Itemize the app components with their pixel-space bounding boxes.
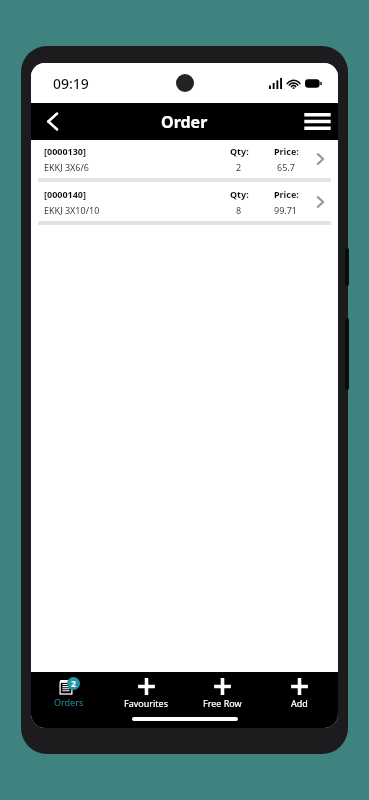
staticText: Orders bbox=[54, 696, 84, 708]
button[interactable]: [0000140] bbox=[31, 183, 338, 221]
staticText: EKKJ 3X6/6 bbox=[44, 161, 90, 173]
staticText: [0000140] bbox=[44, 188, 86, 200]
staticText: Qty: bbox=[230, 145, 249, 157]
staticText: 09:19 bbox=[53, 74, 89, 93]
button[interactable]: Back bbox=[31, 103, 73, 140]
staticText: Favourites bbox=[124, 697, 168, 709]
staticText: Qty: bbox=[230, 188, 249, 200]
button[interactable]: Menu bbox=[296, 103, 338, 140]
staticText: [0000130] bbox=[44, 145, 86, 157]
button[interactable]: Free Row bbox=[184, 677, 261, 709]
staticText: 2 bbox=[236, 161, 242, 173]
staticText: 99.71 bbox=[274, 204, 298, 216]
button[interactable]: Favourites bbox=[107, 677, 184, 709]
staticText: Free Row bbox=[203, 697, 242, 709]
staticText: Price: bbox=[274, 188, 299, 200]
staticText: 2 bbox=[71, 678, 76, 689]
staticText: EKKJ 3X10/10 bbox=[44, 204, 100, 216]
staticText: Add bbox=[291, 697, 308, 709]
button[interactable]: [0000130] bbox=[31, 140, 338, 178]
button[interactable]: Add bbox=[261, 677, 338, 709]
staticText: 8 bbox=[236, 204, 242, 216]
button[interactable]: 2 bbox=[31, 677, 107, 708]
staticText: Price: bbox=[274, 145, 299, 157]
staticText: 65.7 bbox=[277, 161, 295, 173]
staticText: Order bbox=[161, 111, 208, 133]
